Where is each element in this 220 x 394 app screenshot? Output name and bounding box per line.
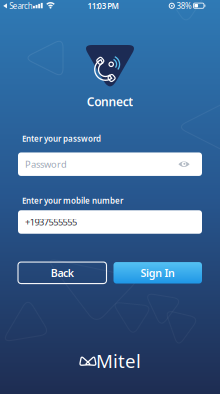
staticText: Mitel bbox=[96, 348, 141, 373]
staticText: Enter your mobile number bbox=[22, 195, 123, 206]
staticText: Sign In bbox=[140, 266, 175, 280]
staticText: Connect bbox=[87, 93, 133, 109]
staticText: +1937555555 bbox=[25, 216, 77, 228]
staticText: Back bbox=[51, 266, 74, 280]
button[interactable]: Back bbox=[18, 262, 106, 284]
staticText: Password bbox=[25, 158, 67, 170]
secureTextField[interactable]: Password bbox=[18, 152, 202, 176]
staticText: Enter your password bbox=[22, 133, 101, 144]
staticText: Search bbox=[9, 1, 33, 11]
button[interactable]: Sign In bbox=[113, 262, 202, 284]
staticText: 38% bbox=[176, 1, 192, 11]
button[interactable]: Back to Search bbox=[3, 1, 33, 11]
staticText: 11:03 PM bbox=[87, 1, 119, 11]
button[interactable]: Show password bbox=[176, 158, 192, 170]
textField[interactable]: +1937555555 bbox=[18, 210, 202, 234]
